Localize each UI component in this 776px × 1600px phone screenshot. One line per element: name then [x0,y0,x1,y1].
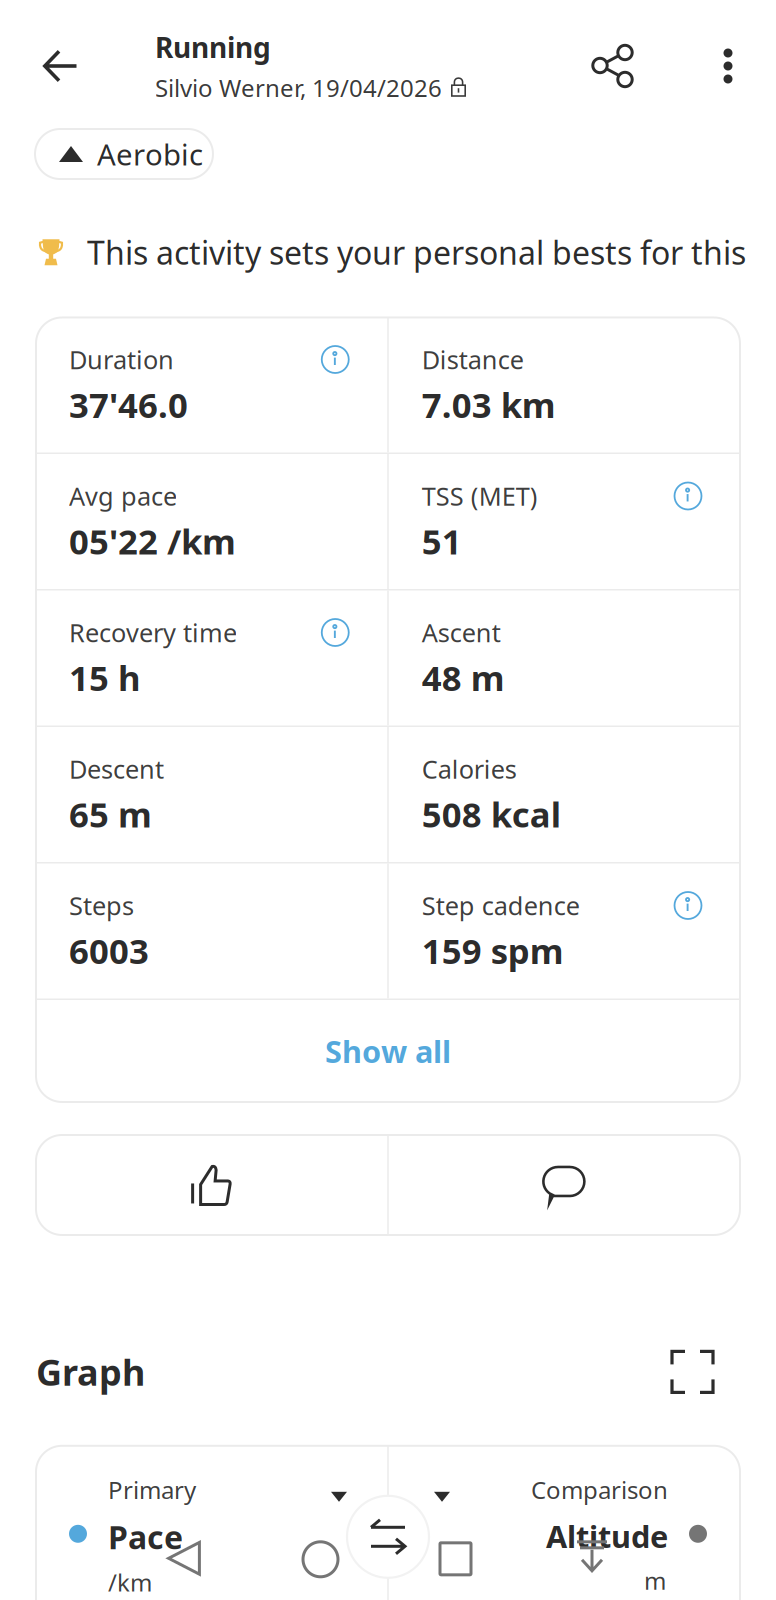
button[interactable]: Recovery time [36,590,387,725]
button[interactable]: Like [36,1135,387,1235]
staticText: Altitude [546,1516,668,1556]
button[interactable]: Share [545,16,680,116]
staticText: This activity sets your personal bests f… [87,231,746,273]
staticText: Step cadence [422,889,580,922]
staticText: 7.03 km [422,381,556,427]
button[interactable]: Comment [389,1135,740,1235]
staticText: 6003 [69,927,149,973]
staticText: Duration [69,343,174,376]
button[interactable]: Show all [36,1000,740,1102]
staticText: 159 spm [422,927,564,973]
staticText: 51 [422,518,462,564]
button[interactable]: Aerobic [35,129,213,179]
staticText: 508 kcal [422,791,561,837]
staticText: 65 m [69,791,152,837]
button[interactable]: Duration [36,317,387,452]
button[interactable]: Distance [389,317,740,452]
button[interactable]: Back [0,16,155,116]
button[interactable]: Steps [36,863,387,998]
staticText: Ascent [422,616,501,649]
staticText: Primary [108,1474,196,1506]
button[interactable]: Avg pace [36,454,387,589]
staticText: Silvio Werner, 19/04/2026 [155,72,442,104]
staticText: Avg pace [69,479,177,513]
button[interactable]: More options [680,16,776,116]
staticText: m [644,1564,666,1596]
staticText: /km [108,1566,152,1598]
staticText: Recovery time [69,616,237,649]
staticText: Calories [422,752,517,786]
button[interactable]: Step cadence [389,863,740,998]
staticText: Distance [422,343,524,376]
staticText: TSS (MET) [422,479,538,513]
staticText: Steps [69,889,134,922]
staticText: Comparison [531,1474,668,1506]
staticText: Descent [69,752,164,786]
button[interactable]: Calories [389,727,740,862]
staticText: Pace [108,1516,183,1558]
staticText: Graph [36,1348,145,1396]
staticText: 05'22 /km [69,518,236,564]
button[interactable]: Swap graphs [347,1496,429,1578]
button[interactable]: TSS (MET) [389,454,740,589]
staticText: Running [155,28,271,66]
staticText: 37'46.0 [69,381,188,427]
button[interactable]: Descent [36,727,387,862]
staticText: 15 h [69,654,141,700]
button[interactable]: Ascent [389,590,740,725]
staticText: Aerobic [97,134,203,173]
staticText: Show all [325,1031,451,1071]
button[interactable]: Full screen [672,1351,713,1392]
staticText: 48 m [422,654,505,700]
